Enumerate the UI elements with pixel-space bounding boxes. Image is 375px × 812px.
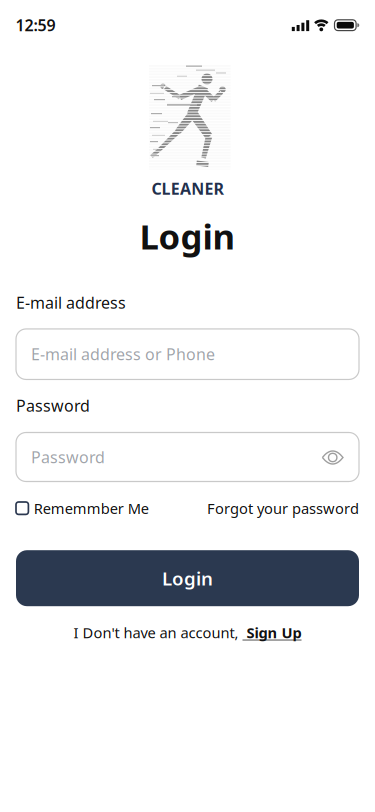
- staticText: Rememmber Me: [34, 498, 149, 518]
- staticText: E-mail address or Phone: [31, 343, 215, 365]
- button[interactable]: Forgot your password: [194, 498, 359, 518]
- button[interactable]: Sign Up: [242, 623, 301, 642]
- staticText: 12:59: [16, 14, 56, 36]
- staticText: Sign Up: [242, 623, 301, 642]
- staticText: Login: [162, 566, 213, 591]
- staticText: Login: [139, 213, 235, 259]
- button[interactable]: Login: [16, 550, 359, 606]
- staticText: Password: [16, 395, 90, 416]
- button[interactable]: [322, 448, 344, 466]
- button[interactable]: Password: [16, 432, 359, 481]
- staticText: Forgot your password: [207, 498, 359, 518]
- staticText: I Don't have an account,: [73, 623, 242, 642]
- button[interactable]: Rememmber Me: [16, 498, 150, 518]
- button[interactable]: E-mail address or Phone: [16, 329, 359, 379]
- staticText: CLEANER: [151, 178, 224, 199]
- staticText: E-mail address: [16, 292, 126, 313]
- staticText: Password: [31, 446, 105, 468]
